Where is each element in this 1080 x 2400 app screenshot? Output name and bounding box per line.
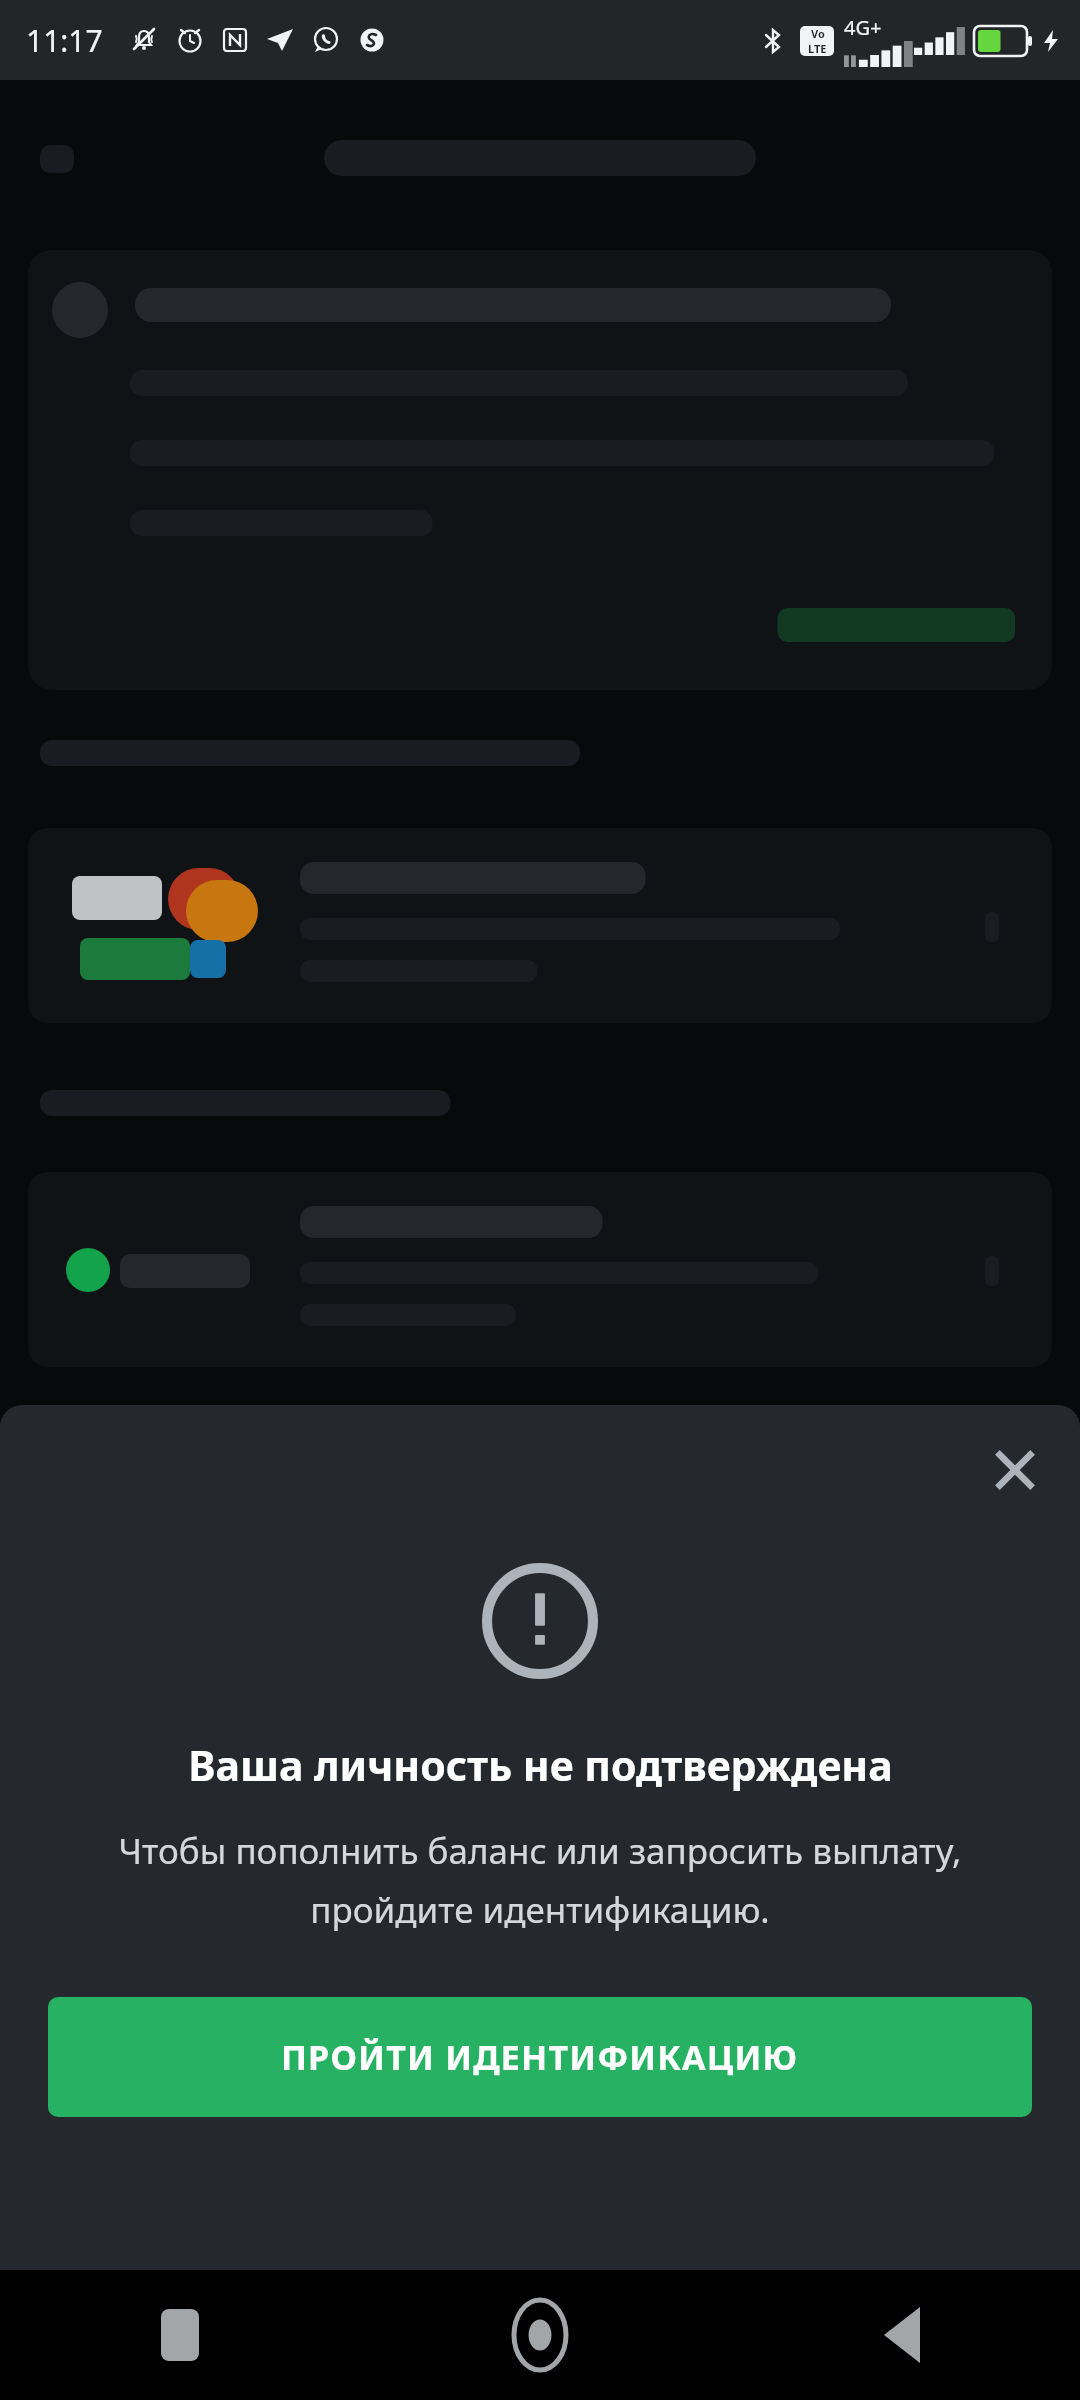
button[interactable]: Назад [720,2270,1080,2400]
staticText: Vo [811,26,825,41]
staticText: ПРОЙТИ ИДЕНТИФИКАЦИЮ [281,2034,799,2080]
staticText: Чтобы пополнить баланс или запросить вып… [40,1827,1040,1933]
staticText: 11:17 [26,20,103,61]
staticText: Ваша личность не подтверждена [188,1737,893,1793]
staticText: LTE [808,41,827,56]
staticText: 4G+ [844,14,882,41]
button[interactable]: ПРОЙТИ ИДЕНТИФИКАЦИЮ [48,1997,1032,2117]
button[interactable]: Главный экран [360,2270,720,2400]
button[interactable]: Закрыть [972,1427,1058,1513]
button[interactable]: Недавние приложения [0,2270,360,2400]
